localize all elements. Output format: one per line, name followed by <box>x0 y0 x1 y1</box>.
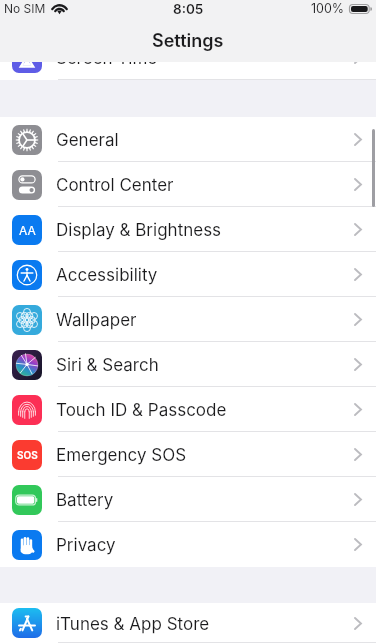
button[interactable]: AA <box>0 207 376 252</box>
staticText: Screen Time <box>56 48 158 69</box>
button[interactable]: Control Center <box>0 162 376 207</box>
button[interactable]: Battery <box>0 477 376 522</box>
staticText: Privacy <box>56 535 116 556</box>
staticText: Control Center <box>56 175 174 196</box>
staticText: iTunes & App Store <box>56 614 210 635</box>
staticText: General <box>56 130 119 151</box>
staticText: No SIM <box>4 1 46 16</box>
button[interactable]: Accessibility <box>0 252 376 297</box>
button[interactable]: iTunes & App Store <box>0 603 376 643</box>
staticText: AA <box>19 223 36 238</box>
staticText: Display & Brightness <box>56 220 222 241</box>
staticText: Touch ID & Passcode <box>56 400 227 421</box>
staticText: Emergency SOS <box>56 445 187 466</box>
staticText: SOS <box>17 449 38 461</box>
staticText: 100% <box>311 1 345 16</box>
staticText: Battery <box>56 490 114 511</box>
button[interactable]: Screen Time <box>0 35 376 80</box>
button[interactable]: Siri & Search <box>0 342 376 387</box>
button[interactable]: Touch ID & Passcode <box>0 387 376 432</box>
button[interactable]: SOS <box>0 432 376 477</box>
staticText: Wallpaper <box>56 310 137 331</box>
staticText: Accessibility <box>56 265 158 286</box>
button[interactable]: General <box>0 117 376 162</box>
button[interactable]: Privacy <box>0 522 376 567</box>
staticText: Settings <box>152 30 224 52</box>
staticText: 8:05 <box>173 1 204 17</box>
button[interactable]: Wallpaper <box>0 297 376 342</box>
staticText: Siri & Search <box>56 355 159 376</box>
